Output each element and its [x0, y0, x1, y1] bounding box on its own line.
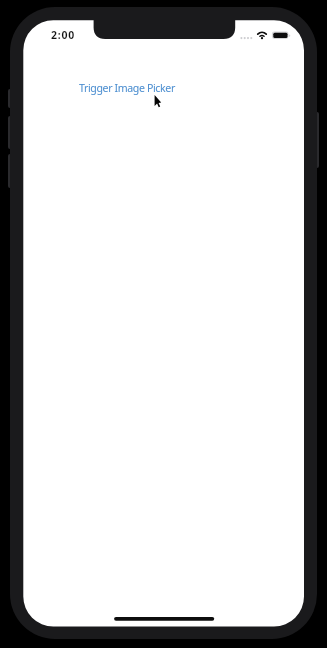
staticText: 2:00 [51, 28, 75, 42]
staticText: Trigger Image Picker [79, 81, 175, 95]
button[interactable]: Trigger Image Picker [79, 81, 175, 95]
